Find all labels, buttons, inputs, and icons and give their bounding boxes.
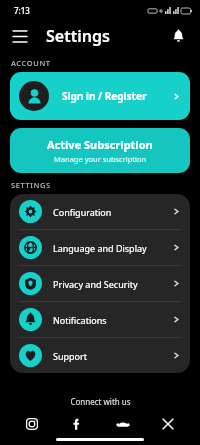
staticText: Configuration <box>53 206 112 218</box>
button[interactable]: Menu <box>6 22 34 50</box>
staticText: 7:13 <box>14 5 30 16</box>
staticText: Active Subscription <box>47 137 153 152</box>
button[interactable]: Language and Display <box>10 230 190 265</box>
button[interactable]: Privacy and Security <box>10 266 190 301</box>
button[interactable]: X <box>158 414 178 434</box>
staticText: ACCOUNT <box>11 58 51 68</box>
staticText: Language and Display <box>53 242 147 254</box>
button[interactable]: Notifications <box>164 22 192 50</box>
staticText: Manage your subscription <box>54 154 147 164</box>
staticText: Support <box>53 350 87 362</box>
button[interactable]: Sign in / Register <box>10 72 190 120</box>
staticText: Connect with us <box>70 396 131 407</box>
button[interactable]: Facebook <box>67 414 87 434</box>
button[interactable]: Active Subscription <box>10 128 190 173</box>
button[interactable]: Instagram <box>22 414 42 434</box>
button[interactable]: Reddit <box>113 414 133 434</box>
staticText: Sign in / Register <box>62 89 147 103</box>
staticText: Settings <box>46 25 110 47</box>
button[interactable]: Support <box>10 338 190 373</box>
staticText: Privacy and Security <box>53 278 138 290</box>
button[interactable]: Configuration <box>10 194 190 229</box>
button[interactable]: Notifications <box>10 302 190 337</box>
staticText: Notifications <box>53 314 107 326</box>
staticText: SETTINGS <box>11 180 51 190</box>
